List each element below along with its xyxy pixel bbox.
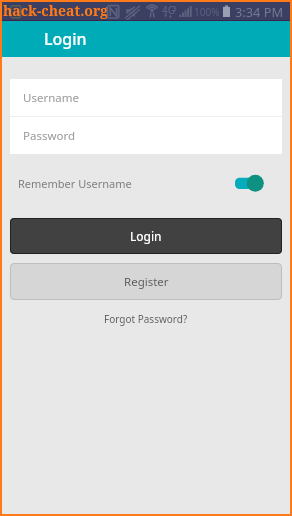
staticText: 3:34 PM bbox=[235, 3, 284, 20]
staticText: 100% bbox=[194, 5, 220, 19]
staticText: Login bbox=[130, 228, 162, 244]
staticText: Password bbox=[23, 128, 76, 144]
button[interactable]: Register bbox=[10, 263, 282, 300]
staticText: hack-cheat.org bbox=[3, 1, 109, 19]
button[interactable]: Username bbox=[10, 79, 282, 116]
button[interactable]: Forgot Password? bbox=[10, 310, 282, 328]
button[interactable]: Remember Username bbox=[10, 173, 282, 193]
staticText: 4G bbox=[162, 3, 175, 17]
staticText: Register bbox=[124, 274, 169, 290]
staticText: Login bbox=[44, 28, 87, 50]
staticText: Username bbox=[23, 90, 79, 106]
button[interactable]: Login bbox=[10, 218, 282, 254]
staticText: Remember Username bbox=[18, 176, 132, 191]
button[interactable]: Password bbox=[10, 117, 282, 154]
staticText: Forgot Password? bbox=[104, 312, 188, 326]
